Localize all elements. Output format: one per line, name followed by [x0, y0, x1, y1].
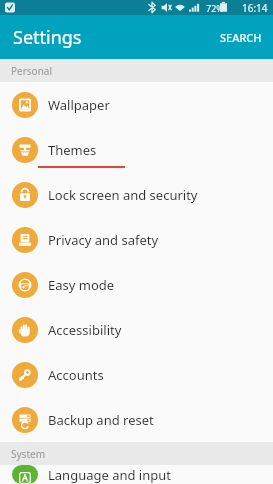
- button[interactable]: Easy mode: [0, 262, 273, 307]
- staticText: Privacy and safety: [48, 231, 159, 249]
- staticText: Accounts: [48, 366, 104, 384]
- button[interactable]: SEARCH: [209, 22, 273, 53]
- button[interactable]: Language and input: [0, 465, 273, 484]
- staticText: Themes: [48, 141, 97, 159]
- button[interactable]: Wallpaper: [0, 82, 273, 127]
- staticText: 16:14: [242, 1, 268, 15]
- staticText: 72%: [206, 2, 224, 14]
- staticText: System: [11, 447, 45, 461]
- staticText: Lock screen and security: [48, 186, 198, 204]
- staticText: Language and input: [48, 466, 171, 484]
- button[interactable]: Lock screen and security: [0, 172, 273, 217]
- staticText: Accessibility: [48, 321, 122, 339]
- button[interactable]: Accounts: [0, 352, 273, 397]
- staticText: Easy mode: [48, 276, 115, 294]
- button[interactable]: Privacy and safety: [0, 217, 273, 262]
- staticText: SEARCH: [220, 30, 262, 45]
- button[interactable]: Themes: [0, 127, 273, 172]
- staticText: Wallpaper: [48, 96, 110, 114]
- staticText: Backup and reset: [48, 411, 154, 429]
- staticText: Settings: [13, 25, 82, 50]
- button[interactable]: Backup and reset: [0, 397, 273, 442]
- staticText: Personal: [11, 64, 53, 78]
- button[interactable]: Accessibility: [0, 307, 273, 352]
